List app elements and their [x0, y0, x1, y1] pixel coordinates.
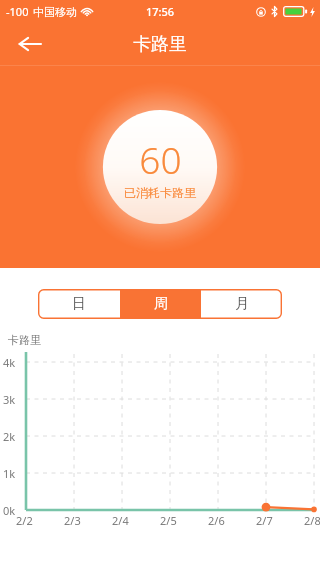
button[interactable]: 周 [120, 289, 201, 319]
button[interactable]: Back [8, 23, 50, 65]
staticText: 2/3 [64, 513, 81, 528]
button[interactable]: 月 [201, 289, 282, 319]
staticText: 卡路里 [8, 333, 41, 347]
staticText: 月 [235, 295, 249, 313]
staticText: 中国移动 [33, 5, 77, 19]
staticText: 日 [72, 295, 86, 313]
staticText: 2/4 [112, 513, 129, 528]
staticText: 3k [3, 392, 16, 407]
staticText: 17:56 [146, 4, 175, 19]
staticText: 60 [139, 134, 182, 184]
staticText: 周 [154, 295, 168, 313]
staticText: 2k [3, 429, 16, 444]
staticText: 2/2 [16, 513, 33, 528]
staticText: 4k [3, 355, 16, 370]
staticText: 2/5 [160, 513, 177, 528]
staticText: 1k [3, 466, 16, 481]
staticText: 2/7 [256, 513, 273, 528]
staticText: 已消耗卡路里 [124, 185, 196, 200]
staticText: 0k [3, 503, 16, 518]
staticText: 2/6 [208, 513, 225, 528]
staticText: 2/8 [304, 513, 320, 528]
button[interactable]: 日 [38, 289, 120, 319]
staticText: 卡路里 [133, 33, 187, 56]
staticText: -100 [6, 4, 29, 19]
